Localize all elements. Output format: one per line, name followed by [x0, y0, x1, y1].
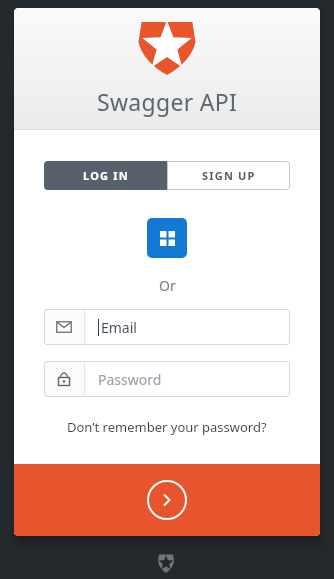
button[interactable]: LOG IN: [44, 161, 167, 190]
staticText: Swagger API: [97, 86, 238, 117]
button[interactable]: [147, 218, 187, 258]
staticText: Email: [101, 318, 137, 337]
button[interactable]: Email: [44, 309, 290, 345]
button[interactable]: Password: [44, 361, 290, 397]
button[interactable]: [14, 464, 320, 536]
button[interactable]: Don’t remember your password?: [67, 418, 267, 436]
button[interactable]: SIGN UP: [167, 161, 290, 190]
staticText: Password: [98, 370, 162, 389]
staticText: SIGN UP: [202, 168, 256, 183]
staticText: LOG IN: [83, 168, 129, 183]
staticText: Or: [159, 276, 176, 295]
